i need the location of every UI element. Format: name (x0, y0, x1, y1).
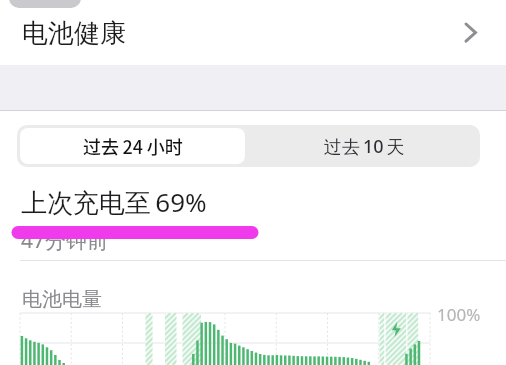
staticText: 100% (437, 303, 481, 326)
staticText: 电池电量 (22, 287, 102, 312)
button[interactable]: 过去 24 小时 (20, 128, 245, 164)
button[interactable]: 电池健康 (0, 12, 506, 65)
staticText: 过去 10 天 (324, 134, 405, 159)
button[interactable]: More (453, 19, 489, 59)
staticText: 47分钟前 (21, 226, 109, 255)
staticText: 电池健康 (22, 17, 126, 50)
staticText: 上次充电至 69% (21, 184, 207, 220)
button[interactable]: 过去 10 天 (248, 125, 480, 167)
staticText: 过去 24 小时 (83, 133, 183, 159)
